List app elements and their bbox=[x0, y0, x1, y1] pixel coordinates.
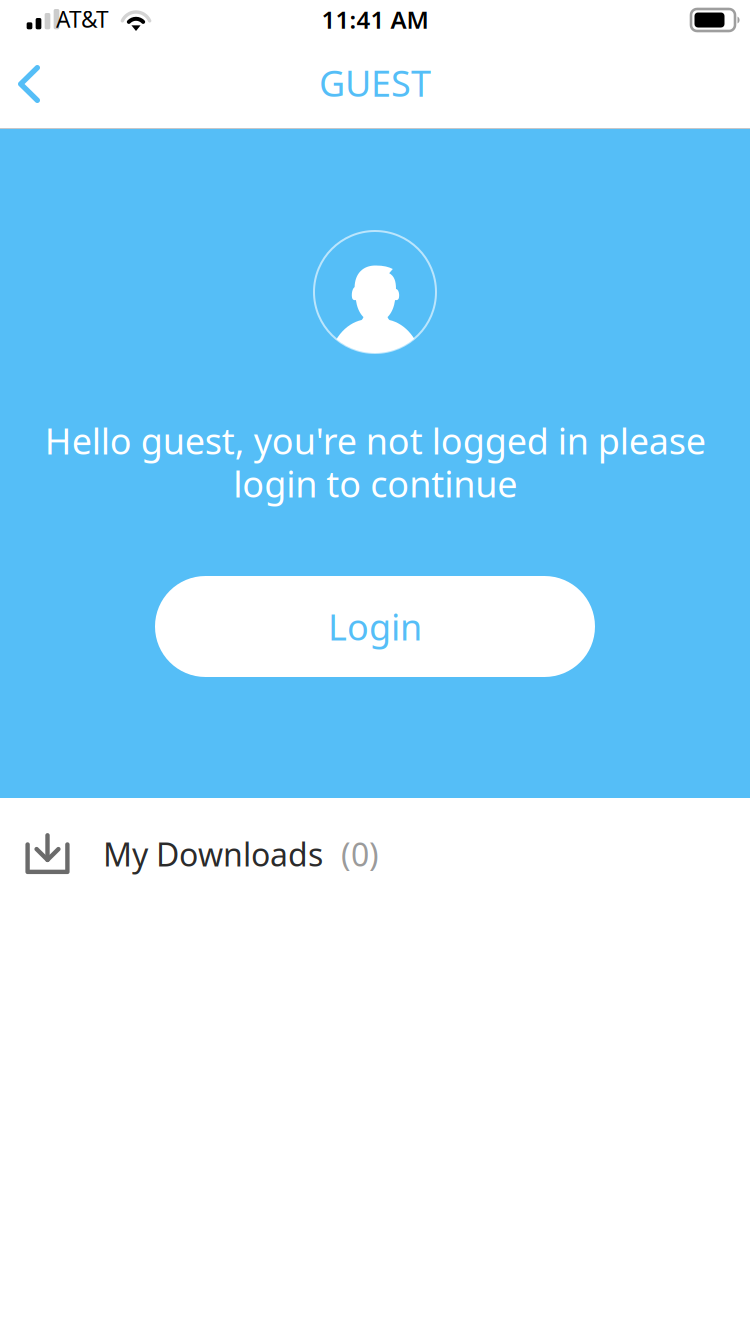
staticText: Login bbox=[328, 603, 422, 650]
staticText: 11:41 AM bbox=[321, 3, 428, 35]
staticText: (0) bbox=[341, 833, 379, 875]
staticText: My Downloads bbox=[103, 833, 323, 875]
staticText: login to continue bbox=[233, 460, 517, 507]
button[interactable]: Back bbox=[1, 52, 57, 116]
button[interactable]: Login bbox=[155, 576, 595, 677]
button[interactable]: My Downloads bbox=[0, 798, 750, 910]
staticText: GUEST bbox=[319, 59, 431, 107]
staticText: Hello guest, you're not logged in please bbox=[44, 417, 705, 464]
staticText: AT&T bbox=[56, 4, 109, 34]
